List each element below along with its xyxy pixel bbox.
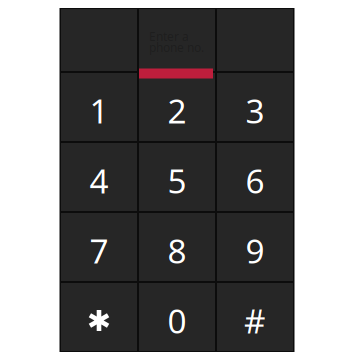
button[interactable]: 3 <box>217 73 293 141</box>
button[interactable]: 1 <box>61 73 137 141</box>
button[interactable]: 0 <box>139 283 215 351</box>
button[interactable]: 9 <box>217 213 293 281</box>
staticText: 7 <box>89 228 108 273</box>
staticText: # <box>244 298 266 343</box>
staticText: 0 <box>167 298 186 343</box>
staticText: 8 <box>167 228 186 273</box>
staticText: 3 <box>245 88 264 133</box>
staticText: 6 <box>245 158 264 203</box>
staticText: 9 <box>245 228 264 273</box>
button[interactable] <box>61 283 137 351</box>
button[interactable]: 6 <box>217 143 293 211</box>
button[interactable]: # <box>217 283 293 351</box>
button[interactable]: 8 <box>139 213 215 281</box>
staticText: 2 <box>167 88 186 133</box>
staticText: 5 <box>167 158 186 203</box>
staticText: 4 <box>89 158 108 203</box>
button[interactable]: 2 <box>139 73 215 141</box>
staticText: 1 <box>89 88 108 133</box>
button[interactable]: 5 <box>139 143 215 211</box>
button[interactable]: 7 <box>61 213 137 281</box>
button[interactable]: 4 <box>61 143 137 211</box>
